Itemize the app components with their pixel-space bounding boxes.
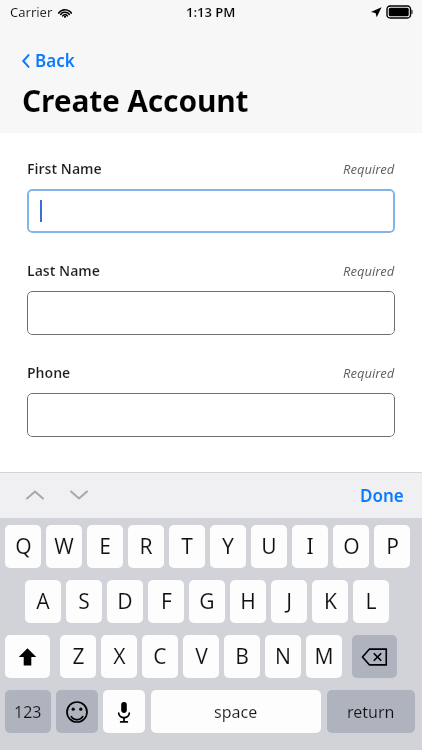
- staticText: T: [181, 532, 193, 561]
- button[interactable]: Emoji: [56, 690, 98, 733]
- staticText: Carrier: [10, 3, 53, 21]
- staticText: R: [139, 532, 153, 561]
- staticText: Last Name: [27, 261, 100, 280]
- button[interactable]: P: [374, 525, 410, 568]
- staticText: P: [386, 532, 399, 561]
- button[interactable]: J: [271, 580, 307, 623]
- button[interactable]: [27, 393, 395, 437]
- staticText: Required: [343, 160, 395, 178]
- button[interactable]: K: [312, 580, 348, 623]
- staticText: S: [78, 587, 90, 616]
- staticText: X: [113, 642, 126, 671]
- button[interactable]: N: [265, 635, 301, 678]
- staticText: Required: [343, 364, 395, 382]
- staticText: D: [117, 587, 133, 616]
- staticText: Back: [35, 49, 75, 72]
- button[interactable]: Done: [352, 478, 412, 513]
- staticText: return: [347, 701, 395, 723]
- button[interactable]: V: [183, 635, 219, 678]
- button[interactable]: 123: [5, 690, 51, 733]
- staticText: Q: [15, 532, 32, 561]
- staticText: Done: [360, 484, 404, 507]
- button[interactable]: G: [189, 580, 225, 623]
- button[interactable]: R: [128, 525, 164, 568]
- staticText: B: [235, 642, 249, 671]
- button[interactable]: W: [46, 525, 82, 568]
- button[interactable]: [27, 189, 395, 233]
- button[interactable]: L: [353, 580, 389, 623]
- button[interactable]: Shift: [5, 635, 50, 678]
- staticText: M: [314, 642, 334, 671]
- staticText: 1:13 PM: [186, 3, 236, 21]
- button[interactable]: O: [333, 525, 369, 568]
- button[interactable]: F: [148, 580, 184, 623]
- staticText: F: [161, 587, 172, 616]
- staticText: Z: [72, 642, 85, 671]
- button[interactable]: X: [101, 635, 137, 678]
- button[interactable]: M: [306, 635, 342, 678]
- staticText: L: [365, 587, 377, 616]
- button[interactable]: I: [292, 525, 328, 568]
- staticText: O: [343, 532, 360, 561]
- button[interactable]: D: [107, 580, 143, 623]
- staticText: C: [153, 642, 167, 671]
- button[interactable]: Dictation: [103, 690, 145, 733]
- staticText: A: [36, 587, 50, 616]
- button[interactable]: Z: [60, 635, 96, 678]
- staticText: V: [195, 642, 208, 671]
- button[interactable]: [27, 291, 395, 335]
- button[interactable]: E: [87, 525, 123, 568]
- button[interactable]: B: [224, 635, 260, 678]
- button[interactable]: C: [142, 635, 178, 678]
- staticText: Required: [343, 262, 395, 280]
- button[interactable]: space: [151, 690, 321, 733]
- button[interactable]: Next field: [62, 478, 96, 512]
- staticText: J: [286, 587, 292, 616]
- button[interactable]: A: [25, 580, 61, 623]
- button[interactable]: Previous field: [18, 478, 52, 512]
- staticText: Phone: [27, 363, 71, 382]
- button[interactable]: H: [230, 580, 266, 623]
- staticText: K: [324, 587, 337, 616]
- staticText: E: [99, 532, 111, 561]
- button[interactable]: T: [169, 525, 205, 568]
- button[interactable]: Q: [5, 525, 41, 568]
- button[interactable]: return: [327, 690, 415, 733]
- button[interactable]: Backspace: [352, 635, 397, 678]
- staticText: U: [261, 532, 277, 561]
- staticText: G: [199, 587, 215, 616]
- button[interactable]: S: [66, 580, 102, 623]
- button[interactable]: Back: [18, 47, 79, 74]
- staticText: First Name: [27, 159, 102, 178]
- staticText: H: [240, 587, 256, 616]
- staticText: space: [214, 701, 258, 723]
- staticText: 123: [14, 701, 42, 723]
- staticText: I: [306, 532, 314, 561]
- staticText: Create Account: [22, 80, 249, 121]
- staticText: N: [275, 642, 291, 671]
- staticText: Y: [222, 532, 234, 561]
- button[interactable]: U: [251, 525, 287, 568]
- staticText: W: [54, 532, 74, 561]
- button[interactable]: Y: [210, 525, 246, 568]
